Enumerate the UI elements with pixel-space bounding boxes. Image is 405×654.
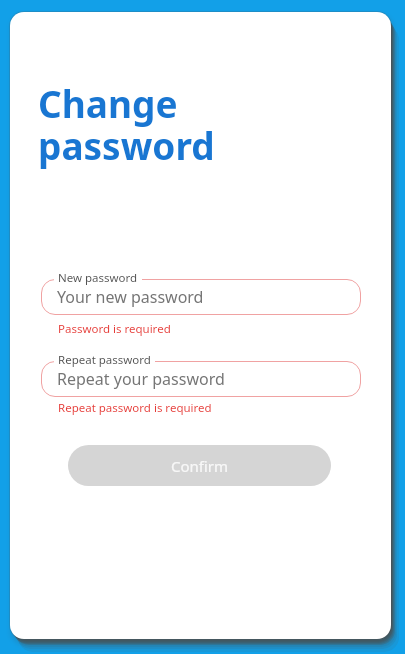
button[interactable]: Your new password <box>41 279 361 315</box>
button[interactable]: Repeat your password <box>41 361 361 397</box>
staticText: New password <box>58 270 138 286</box>
staticText: Confirm <box>171 456 229 476</box>
staticText: Password is required <box>58 321 171 337</box>
staticText: Your new password <box>57 286 204 308</box>
staticText: Repeat your password <box>57 368 225 390</box>
staticText: Change password <box>38 78 215 171</box>
staticText: Repeat password is required <box>58 400 212 416</box>
button[interactable]: Confirm <box>68 445 331 486</box>
staticText: Repeat password <box>58 352 151 368</box>
